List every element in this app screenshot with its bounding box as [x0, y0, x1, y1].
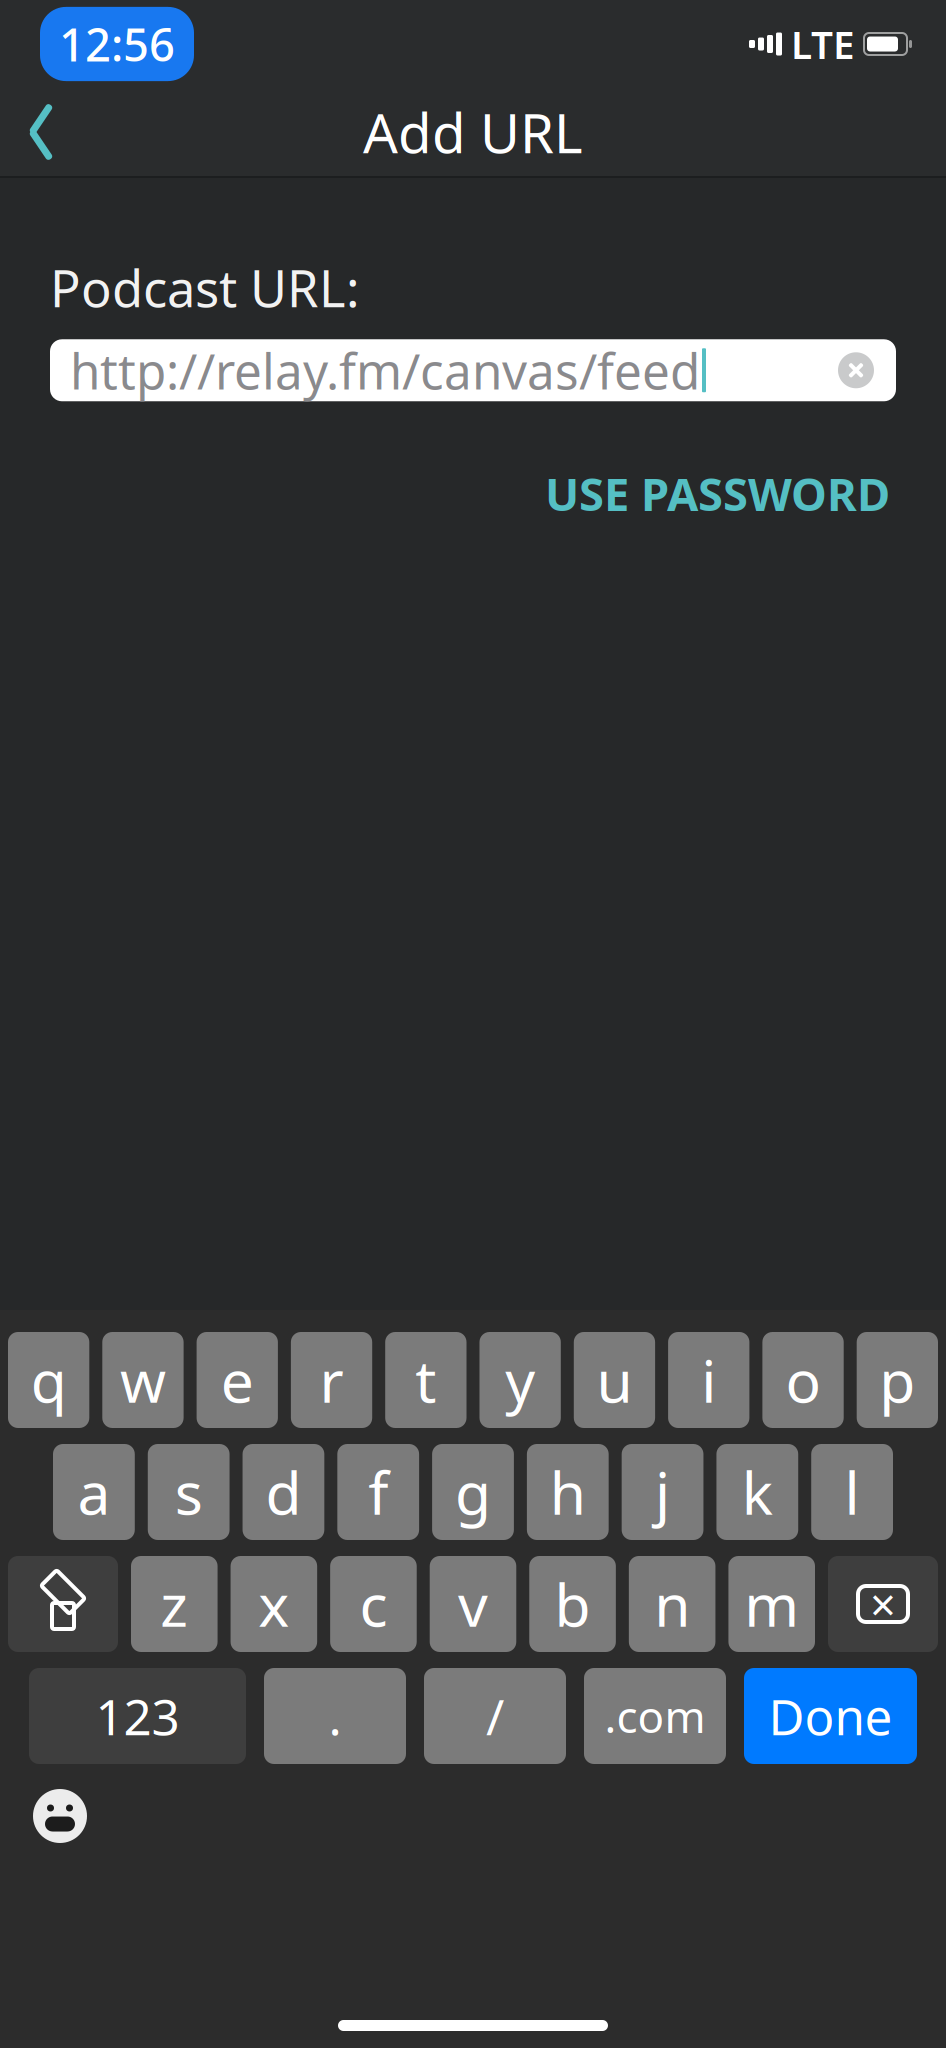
button[interactable]: c [330, 1556, 417, 1652]
button[interactable]: 123 [29, 1668, 246, 1764]
staticText: h [550, 1453, 586, 1531]
button[interactable]: Clear text [828, 352, 884, 388]
staticText: .com [604, 1687, 705, 1745]
staticText: http://relay.fm/canvas/feed [70, 337, 700, 403]
staticText: . [328, 1683, 341, 1749]
button[interactable]: s [148, 1444, 230, 1540]
button[interactable]: x [231, 1556, 317, 1652]
staticText: r [319, 1341, 343, 1419]
button[interactable]: k [716, 1444, 798, 1540]
button[interactable]: e [197, 1332, 278, 1428]
button[interactable]: a [53, 1444, 135, 1540]
staticText: c [359, 1565, 387, 1643]
staticText: i [701, 1341, 716, 1419]
staticText: w [120, 1341, 166, 1419]
staticText: × [870, 1574, 896, 1634]
button[interactable]: p [857, 1332, 938, 1428]
staticText: 12:56 [59, 14, 175, 74]
staticText: USE PASSWORD [545, 463, 890, 523]
button[interactable]: n [629, 1556, 715, 1652]
staticText: Add URL [363, 96, 583, 168]
button[interactable]: u [574, 1332, 655, 1428]
button[interactable]: . [264, 1668, 406, 1764]
button[interactable]: Back [0, 89, 84, 175]
staticText: n [654, 1565, 690, 1643]
staticText: m [744, 1565, 799, 1643]
staticText: / [486, 1683, 504, 1749]
button[interactable]: b [529, 1556, 616, 1652]
button[interactable]: t [385, 1332, 466, 1428]
button[interactable]: USE PASSWORD [539, 453, 896, 533]
staticText: q [31, 1341, 67, 1419]
staticText: u [596, 1341, 632, 1419]
staticText: a [77, 1453, 110, 1531]
button[interactable]: m [728, 1556, 815, 1652]
button[interactable]: w [102, 1332, 184, 1428]
staticText: p [879, 1341, 915, 1419]
staticText: f [368, 1453, 388, 1531]
staticText: j [655, 1453, 670, 1531]
staticText: Podcast URL: [50, 254, 360, 321]
button[interactable]: v [430, 1556, 516, 1652]
button[interactable]: o [762, 1332, 844, 1428]
staticText: x [258, 1565, 289, 1643]
staticText: t [415, 1341, 436, 1419]
button[interactable]: Delete [828, 1556, 938, 1652]
staticText: e [221, 1341, 254, 1419]
button[interactable]: r [291, 1332, 372, 1428]
staticText: o [786, 1341, 821, 1419]
button[interactable]: q [8, 1332, 89, 1428]
button[interactable]: f [337, 1444, 419, 1540]
staticText: d [265, 1453, 301, 1531]
button[interactable]: g [432, 1444, 514, 1540]
staticText: Done [768, 1683, 892, 1749]
staticText: s [175, 1453, 203, 1531]
button[interactable]: d [243, 1444, 324, 1540]
button[interactable]: / [424, 1668, 566, 1764]
button[interactable]: y [479, 1332, 561, 1428]
staticText: g [455, 1453, 491, 1531]
button[interactable]: Shift [8, 1556, 118, 1652]
staticText: LTE [791, 18, 855, 70]
button[interactable]: Done [744, 1668, 917, 1764]
button[interactable]: j [622, 1444, 703, 1540]
staticText: k [742, 1453, 773, 1531]
staticText: b [555, 1565, 591, 1643]
button[interactable]: .com [584, 1668, 726, 1764]
button[interactable]: i [668, 1332, 749, 1428]
staticText: y [505, 1341, 535, 1419]
button[interactable]: Emoji keyboard [20, 1776, 100, 1856]
staticText: v [458, 1565, 488, 1643]
button[interactable]: h [527, 1444, 609, 1540]
button[interactable]: z [131, 1556, 218, 1652]
staticText: z [160, 1565, 188, 1643]
button[interactable]: l [811, 1444, 893, 1540]
staticText: l [845, 1453, 860, 1531]
staticText: 123 [95, 1683, 179, 1749]
